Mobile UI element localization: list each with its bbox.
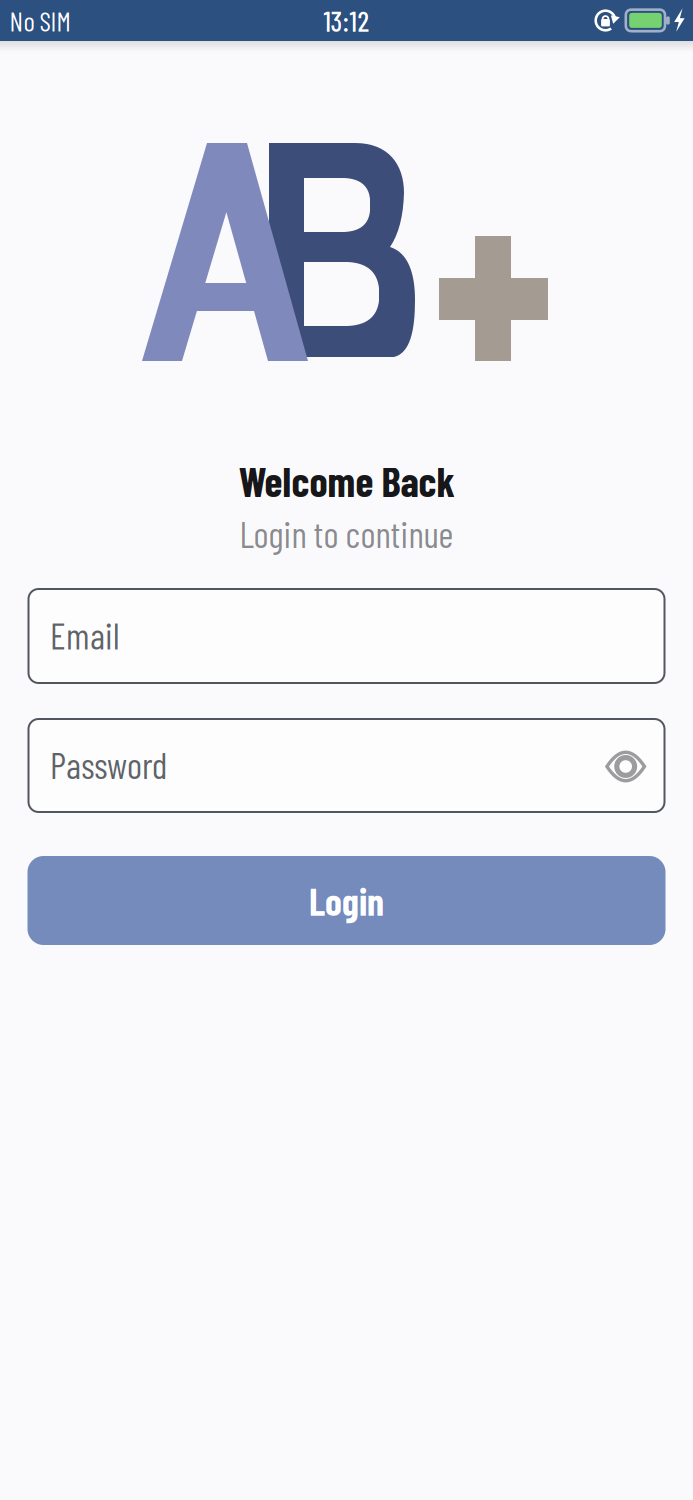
button[interactable]: Show password (600, 740, 652, 792)
button[interactable]: Email (27, 588, 665, 684)
button[interactable]: Password (27, 718, 665, 813)
staticText: Login (309, 878, 384, 923)
button[interactable]: Login (27, 856, 665, 945)
staticText: No SIM (9, 4, 70, 37)
staticText: Password (50, 743, 167, 786)
staticText: Welcome Back (238, 456, 454, 505)
staticText: Login to continue (239, 512, 453, 555)
staticText: Email (50, 613, 120, 657)
staticText: 13:12 (323, 4, 369, 37)
